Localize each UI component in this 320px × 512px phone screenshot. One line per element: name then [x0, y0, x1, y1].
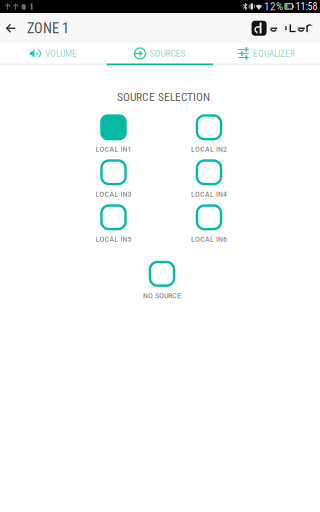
staticText: LOCAL IN4 [191, 189, 227, 199]
staticText: LOCAL IN5 [95, 234, 131, 244]
button[interactable]: NO SOURCE [127, 261, 197, 299]
button[interactable]: SOURCES [107, 43, 213, 65]
button[interactable]: LOCAL IN4 [174, 160, 244, 198]
button[interactable]: LOCAL IN2 [174, 115, 244, 153]
staticText: LOCAL IN1 [95, 144, 131, 154]
staticText: EQUALIZER [253, 48, 295, 59]
staticText: VOLUME [45, 48, 77, 59]
staticText: SOURCES [149, 48, 185, 59]
button[interactable]: LOCAL IN6 [174, 205, 244, 243]
staticText: LOCAL IN2 [191, 144, 227, 154]
button[interactable]: LOCAL IN3 [78, 160, 148, 198]
button[interactable]: Back [0, 13, 22, 43]
staticText: LOCAL IN6 [191, 234, 227, 244]
staticText: 12% [264, 0, 283, 13]
button[interactable]: EQUALIZER [213, 43, 320, 65]
staticText: LOCAL IN3 [95, 189, 131, 199]
button[interactable]: LOCAL IN5 [78, 205, 148, 243]
staticText: 11:58 [295, 1, 317, 12]
staticText: SOURCE SELECTION [117, 90, 210, 104]
button[interactable]: VOLUME [0, 43, 107, 65]
button[interactable]: LOCAL IN1 [78, 115, 148, 153]
staticText: ZONE 1 [27, 20, 69, 37]
staticText: NO SOURCE [143, 291, 181, 300]
